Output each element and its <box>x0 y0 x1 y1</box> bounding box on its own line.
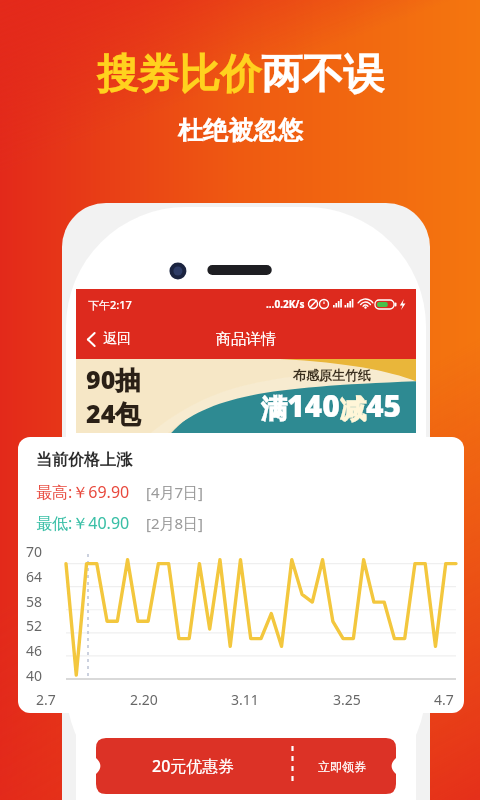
staticText: 2.20 <box>130 690 158 709</box>
staticText: 最低:￥40.90 <box>36 512 130 534</box>
staticText: 52 <box>26 616 43 635</box>
staticText: 46 <box>26 641 43 660</box>
staticText: 90抽 <box>86 362 141 396</box>
staticText: 当前价格上涨 <box>36 450 132 470</box>
staticText: 24包 <box>86 396 141 430</box>
button[interactable]: 20元优惠券 <box>96 738 396 794</box>
staticText: 20元优惠券 <box>152 755 235 777</box>
staticText: [4月7日] <box>146 482 204 502</box>
staticText: 商品详情 <box>216 330 276 349</box>
staticText: 64 <box>26 567 43 586</box>
button[interactable]: 当前价格上涨 <box>18 437 464 713</box>
staticText: 满 <box>261 393 287 426</box>
staticText: 4.7 <box>434 690 454 709</box>
staticText: 45 <box>366 385 402 426</box>
staticText: 布感原生竹纸 <box>293 367 371 383</box>
staticText: ...0.2K/s <box>266 297 305 311</box>
staticText: 140 <box>287 385 340 426</box>
staticText: [2月8日] <box>146 513 204 533</box>
staticText: 两不误 <box>261 49 384 101</box>
staticText: 京东 <box>89 443 105 453</box>
staticText: 减 <box>340 393 366 426</box>
staticText: 杜绝被忽悠 <box>178 115 303 146</box>
staticText: 搜券比价 <box>97 49 261 101</box>
staticText: 70 <box>26 542 43 561</box>
staticText: 下午2:17 <box>88 297 132 312</box>
staticText: 40 <box>26 666 43 685</box>
staticText: 3.11 <box>231 690 259 709</box>
staticText: 3.25 <box>333 690 361 709</box>
staticText: 返回 <box>103 330 131 348</box>
staticText: 最高:￥69.90 <box>36 481 130 503</box>
staticText: 清风抽纸原木纯品 竹浆本色抽纸巾大图纸整箱batch家用实惠装 <box>114 442 366 454</box>
staticText: 2.7 <box>36 690 56 709</box>
staticText: 立即领券 <box>318 759 366 774</box>
staticText: 58 <box>26 592 43 611</box>
button[interactable]: 返回 <box>76 324 139 354</box>
